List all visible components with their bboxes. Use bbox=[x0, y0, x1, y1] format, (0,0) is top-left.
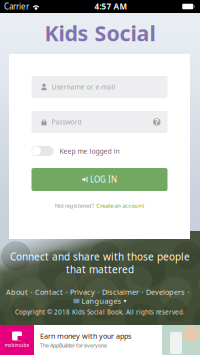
button[interactable]: Languages bbox=[73, 296, 126, 306]
button[interactable]: Contact bbox=[35, 287, 63, 297]
staticText: mobincube bbox=[4, 342, 29, 348]
button[interactable]: mobincube bbox=[0, 325, 200, 355]
staticText: Create an account bbox=[96, 202, 144, 209]
staticText: Kids Social bbox=[44, 18, 155, 48]
staticText: LOG IN bbox=[90, 174, 117, 185]
staticText: that mattered bbox=[66, 262, 134, 276]
button[interactable]: Password bbox=[31, 111, 167, 133]
staticText: · bbox=[187, 287, 189, 297]
button[interactable]: LOG IN bbox=[31, 168, 167, 191]
staticText: Contact bbox=[35, 287, 63, 297]
button[interactable]: About bbox=[6, 287, 28, 297]
staticText: · bbox=[97, 287, 99, 297]
staticText: Privacy bbox=[70, 287, 95, 297]
staticText: Keep me logged in bbox=[59, 146, 119, 156]
staticText: ? bbox=[155, 117, 159, 127]
staticText: Languages bbox=[81, 296, 121, 306]
staticText: Developers bbox=[146, 287, 185, 297]
staticText: About bbox=[6, 287, 28, 297]
staticText: Password bbox=[51, 117, 81, 127]
button[interactable]: Privacy bbox=[70, 287, 95, 297]
staticText: Earn money with your apps bbox=[40, 331, 131, 341]
staticText: 4:57 AM bbox=[94, 1, 127, 12]
button[interactable]: Keep me logged in bbox=[31, 145, 167, 157]
button[interactable]: Disclaimer bbox=[102, 287, 139, 297]
staticText: Copyright © 2018 Kids Social Book. All r… bbox=[15, 308, 185, 316]
staticText: Connect and share with those people bbox=[10, 250, 190, 263]
button[interactable]: Username or e-mail bbox=[31, 76, 167, 98]
staticText: ▾ bbox=[123, 297, 126, 304]
staticText: Not registered? bbox=[55, 202, 94, 209]
staticText: Username or e-mail bbox=[51, 82, 115, 92]
button[interactable]: Developers bbox=[146, 287, 185, 297]
staticText: Disclaimer bbox=[102, 287, 139, 297]
staticText: · bbox=[141, 287, 143, 297]
staticText: · bbox=[65, 287, 67, 297]
staticText: The AppBuilder for everyone bbox=[40, 342, 107, 349]
staticText: · bbox=[30, 287, 32, 297]
button[interactable]: Not registered? bbox=[31, 200, 167, 211]
staticText: Carrier bbox=[4, 1, 29, 12]
